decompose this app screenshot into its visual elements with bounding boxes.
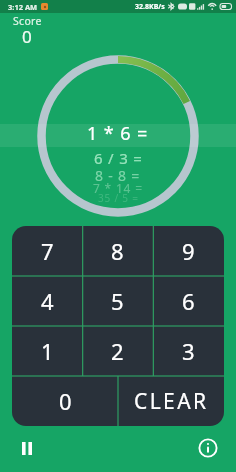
- staticText: 32.8KB/s: [135, 2, 165, 12]
- staticText: 0: [59, 386, 72, 416]
- staticText: 1: [41, 336, 54, 366]
- staticText: 1 * 6 =: [87, 121, 149, 142]
- button[interactable]: 4: [12, 276, 82, 326]
- staticText: 9: [182, 236, 195, 266]
- staticText: 8 - 8 =: [95, 166, 141, 185]
- staticText: Score: [13, 14, 42, 28]
- staticText: 5: [111, 286, 124, 316]
- staticText: 3: [182, 336, 195, 366]
- button[interactable]: 9: [153, 226, 224, 276]
- staticText: CLEAR: [134, 387, 209, 416]
- staticText: 3:12 AM: [8, 2, 38, 12]
- button[interactable]: 7: [12, 226, 82, 276]
- staticText: 6 / 3 =: [94, 148, 143, 168]
- staticText: 6: [182, 286, 195, 316]
- button[interactable]: Pause: [13, 434, 41, 462]
- button[interactable]: 5: [82, 276, 153, 326]
- staticText: 2: [111, 336, 124, 366]
- button[interactable]: 6: [153, 276, 224, 326]
- button[interactable]: CLEAR: [118, 376, 224, 426]
- button[interactable]: 1: [12, 326, 82, 376]
- staticText: 7: [41, 236, 54, 266]
- staticText: 7 * 14 =: [93, 180, 143, 196]
- staticText: 8: [111, 236, 124, 266]
- staticText: 0: [22, 25, 32, 48]
- staticText: 35 / 5 =: [98, 191, 139, 205]
- staticText: 4: [41, 286, 54, 316]
- button[interactable]: 0: [12, 376, 118, 426]
- button[interactable]: Info: [194, 434, 222, 462]
- button[interactable]: 3: [153, 326, 224, 376]
- button[interactable]: 2: [82, 326, 153, 376]
- button[interactable]: 8: [82, 226, 153, 276]
